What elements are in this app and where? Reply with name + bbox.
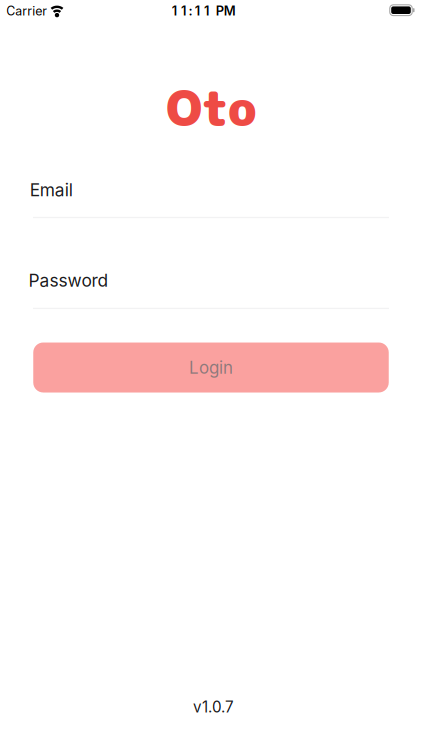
staticText: 1 [181, 3, 186, 19]
button[interactable]: Password [32, 251, 390, 311]
staticText: 1 [195, 3, 200, 19]
button[interactable]: Email [32, 160, 390, 220]
staticText: : [188, 3, 192, 19]
staticText: Email [30, 179, 73, 200]
staticText: PM [216, 3, 236, 19]
staticText: 1 [172, 3, 177, 19]
button[interactable]: Login [33, 342, 389, 392]
staticText: v1.0.7 [193, 698, 234, 716]
staticText: Password [28, 270, 108, 291]
staticText: Login [189, 357, 233, 378]
staticText: Oto [166, 74, 257, 141]
staticText: 1 [204, 3, 209, 19]
staticText: Carrier [6, 4, 47, 19]
